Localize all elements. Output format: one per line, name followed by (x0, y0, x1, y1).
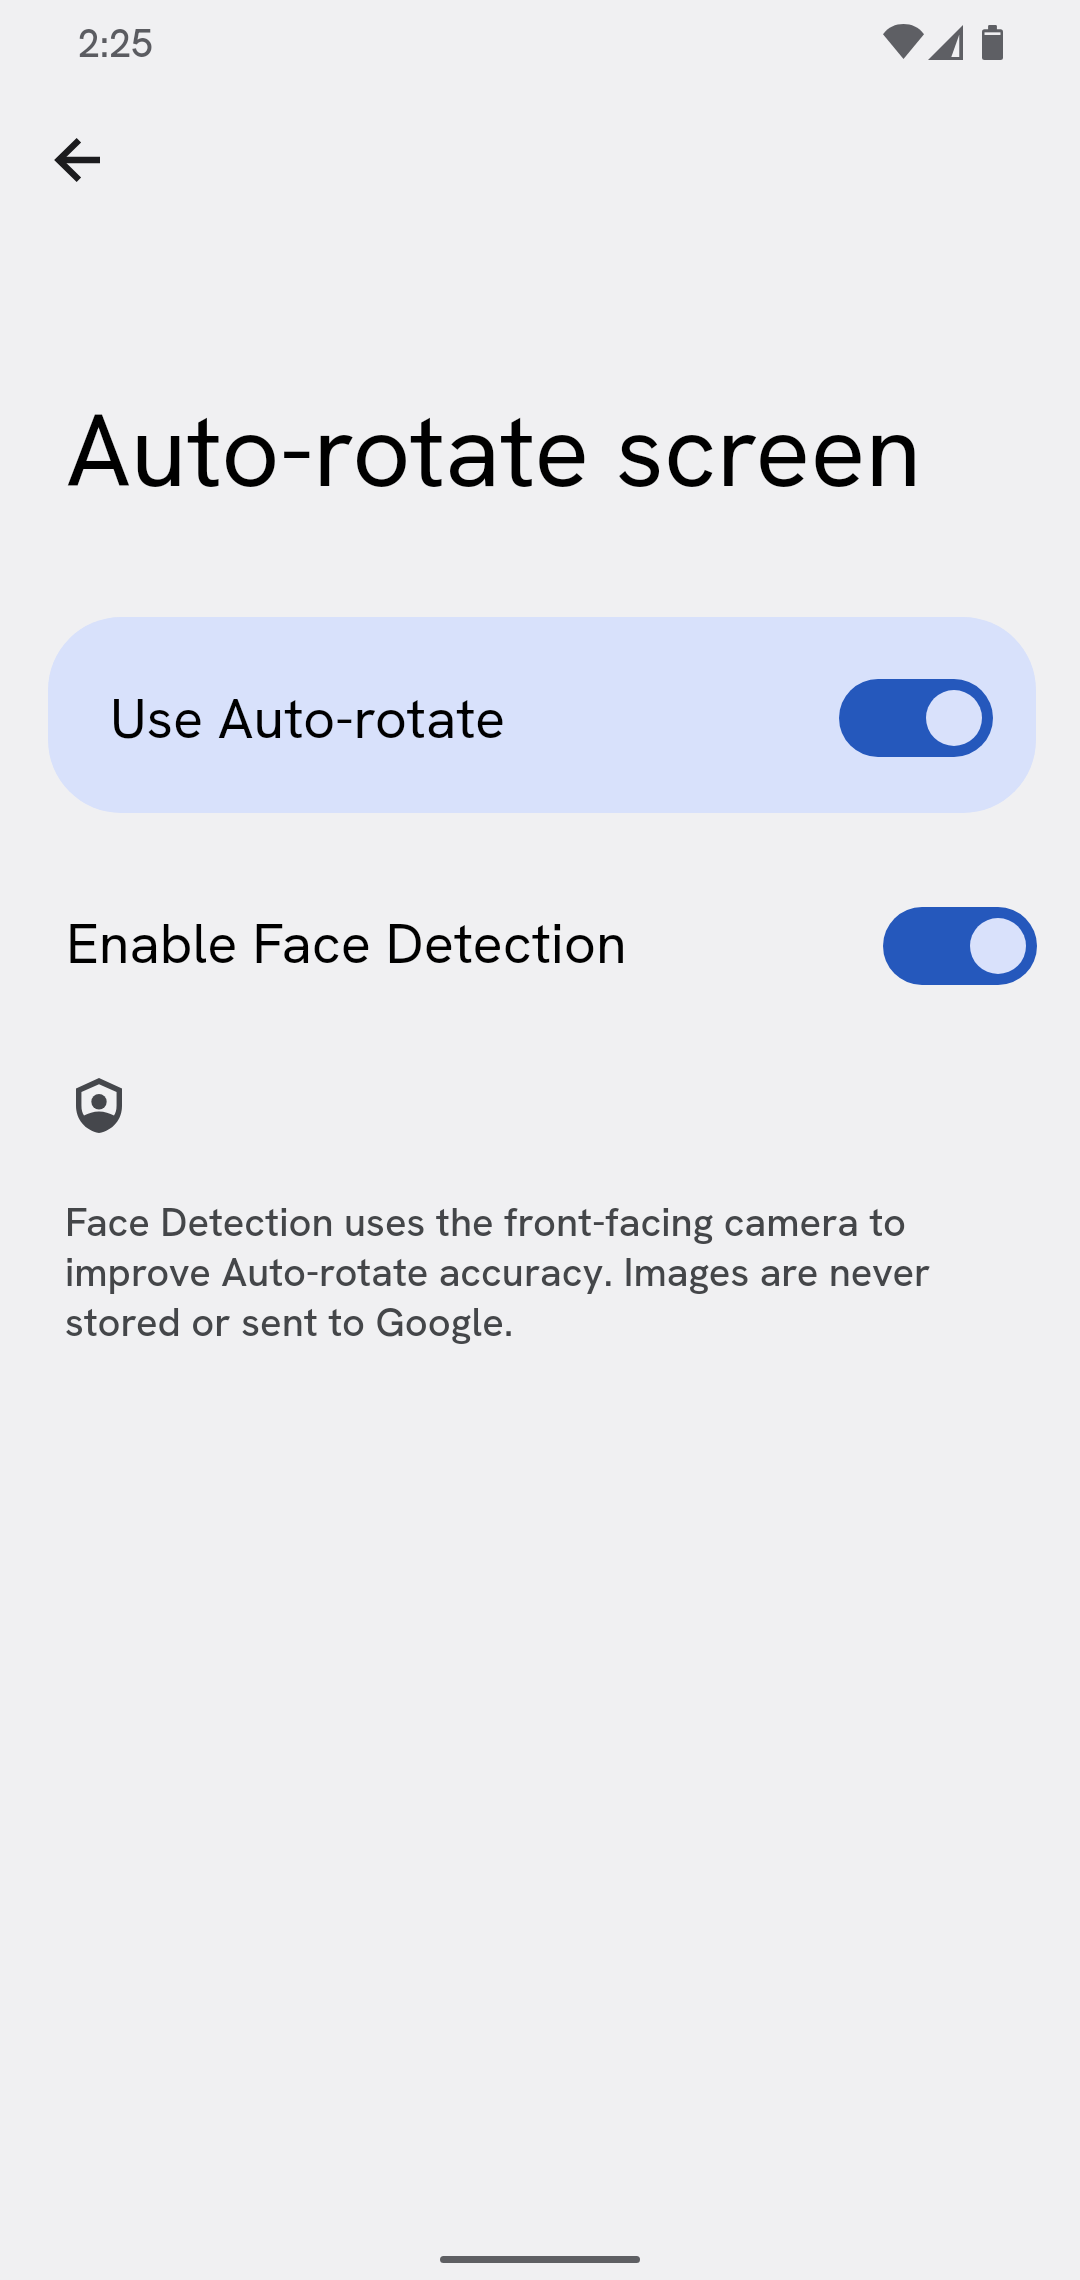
staticText: Auto-rotate screen (66, 384, 922, 517)
staticText: 2:25 (78, 18, 153, 69)
button[interactable]: Use Auto-rotate (48, 617, 1036, 813)
other: Privacy (76, 1078, 122, 1133)
staticText: Use Auto-rotate (110, 682, 506, 755)
button[interactable]: Toggle, on (839, 679, 993, 757)
button[interactable]: Enable Face Detection (0, 886, 1080, 1004)
staticText: Face Detection uses the front-facing cam… (65, 1196, 955, 1348)
staticText: Enable Face Detection (66, 907, 627, 980)
button[interactable]: Navigate up (28, 110, 128, 210)
button[interactable]: Toggle, on (883, 907, 1037, 985)
